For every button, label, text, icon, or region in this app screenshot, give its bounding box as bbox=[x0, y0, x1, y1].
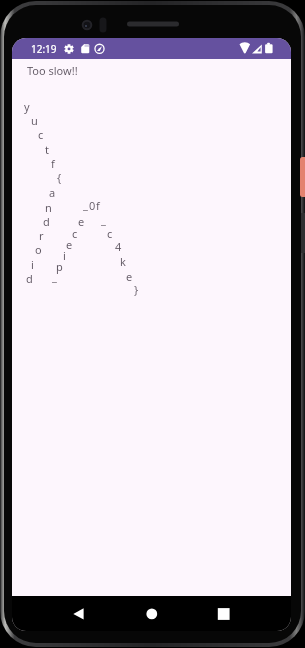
staticText: p bbox=[56, 259, 63, 274]
staticText: y bbox=[24, 99, 30, 114]
staticText: a bbox=[49, 185, 56, 200]
staticText: e bbox=[66, 237, 73, 252]
button[interactable]: Back bbox=[62, 596, 96, 631]
staticText: f bbox=[51, 156, 55, 171]
staticText: r bbox=[39, 228, 44, 243]
staticText: c bbox=[107, 226, 113, 241]
staticText: i bbox=[31, 257, 34, 272]
staticText: u bbox=[31, 113, 38, 128]
staticText: 0 bbox=[89, 198, 96, 213]
staticText: o bbox=[35, 242, 42, 257]
staticText: k bbox=[120, 254, 126, 269]
button[interactable]: Settings bbox=[62, 38, 84, 59]
staticText: n bbox=[45, 200, 52, 215]
staticText: t bbox=[45, 142, 49, 157]
button[interactable]: Home bbox=[135, 596, 169, 631]
staticText: f bbox=[96, 198, 100, 213]
other: Power bbox=[300, 157, 305, 197]
staticText: c bbox=[38, 127, 44, 142]
staticText: e bbox=[78, 214, 85, 229]
staticText: _ bbox=[83, 197, 88, 212]
staticText: Too slow!! bbox=[27, 63, 78, 78]
staticText: i bbox=[63, 248, 66, 263]
staticText: c bbox=[72, 226, 78, 241]
staticText: } bbox=[134, 282, 139, 297]
staticText: d bbox=[43, 214, 50, 229]
staticText: d bbox=[26, 271, 33, 286]
staticText: _ bbox=[101, 212, 106, 227]
staticText: 4 bbox=[115, 239, 122, 254]
staticText: e bbox=[126, 269, 133, 284]
button[interactable]: Recent apps bbox=[207, 596, 241, 631]
staticText: { bbox=[57, 170, 62, 185]
staticText: 12:19 bbox=[31, 42, 57, 56]
staticText: _ bbox=[52, 269, 57, 284]
